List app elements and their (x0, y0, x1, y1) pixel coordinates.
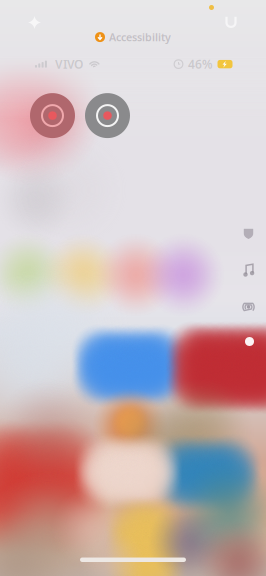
button[interactable]: Accessibility (95, 30, 171, 44)
staticText: 46% (188, 56, 213, 72)
button[interactable]: Stop (85, 93, 130, 138)
button[interactable]: Record (30, 93, 75, 138)
staticText: Accessibility (109, 30, 171, 44)
staticText: VIVO (55, 56, 83, 72)
